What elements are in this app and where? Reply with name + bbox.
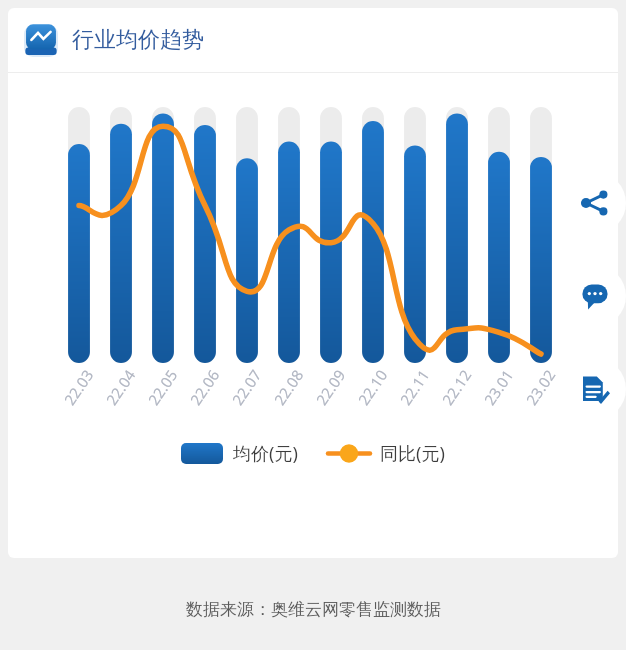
staticText: 22.05 (143, 365, 182, 409)
button[interactable]: Comments (564, 265, 626, 327)
button[interactable]: 行业均价趋势 (8, 8, 618, 72)
staticText: 23.02 (521, 365, 560, 409)
staticText: 22.08 (269, 365, 308, 409)
staticText: 22.07 (227, 365, 266, 409)
button[interactable]: Edit report (564, 358, 626, 420)
staticText: 22.09 (311, 365, 350, 409)
staticText: 22.06 (185, 365, 224, 409)
staticText: 行业均价趋势 (72, 26, 204, 54)
staticText: 22.04 (101, 365, 140, 409)
staticText: 22.11 (395, 365, 434, 409)
button[interactable]: Share (564, 172, 626, 234)
staticText: 22.10 (353, 365, 392, 409)
button[interactable]: 同比(元) (328, 441, 445, 466)
staticText: 均价(元) (233, 441, 298, 466)
staticText: 数据来源：奥维云网零售监测数据 (186, 599, 441, 620)
staticText: 同比(元) (380, 441, 445, 466)
staticText: 22.12 (437, 365, 476, 409)
button[interactable]: 均价(元) (181, 441, 298, 466)
staticText: 23.01 (479, 365, 518, 409)
staticText: 22.03 (59, 365, 98, 409)
